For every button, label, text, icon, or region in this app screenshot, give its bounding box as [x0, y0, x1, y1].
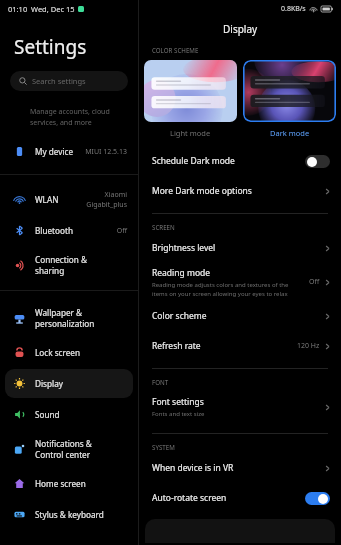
button[interactable]: WLAN	[5, 185, 133, 214]
staticText: Settings	[14, 34, 87, 60]
button[interactable]: When device is in VR	[139, 453, 341, 483]
staticText: Off	[116, 226, 127, 236]
staticText: Home screen	[35, 478, 86, 489]
staticText: Bluetooth	[35, 225, 73, 236]
staticText: Reading mode	[152, 267, 211, 279]
staticText: 01:10 Wed, Dec 15	[8, 4, 75, 14]
button[interactable]: Schedule Dark mode	[139, 146, 341, 176]
staticText: MIUI 12.5.13	[85, 147, 127, 157]
staticText: FONT	[152, 378, 169, 386]
staticText: Sound	[35, 409, 60, 420]
staticText: When device is in VR	[152, 462, 234, 474]
staticText: Connection & sharing	[35, 254, 87, 276]
staticText: Fonts and text size	[152, 410, 205, 418]
staticText: Light mode	[170, 128, 211, 138]
button[interactable]: Connection & sharing	[5, 247, 133, 283]
button[interactable]: Notifications & Control center	[5, 431, 133, 467]
staticText: WLAN	[35, 194, 59, 205]
button[interactable]: Brightness level	[139, 233, 341, 263]
button[interactable]: My device	[5, 137, 133, 166]
staticText: Manage accounts, cloud services, and mor…	[30, 107, 110, 127]
staticText: Auto-rotate screen	[152, 492, 227, 504]
button[interactable]: Search settings	[10, 71, 128, 91]
button[interactable]: Lock screen	[5, 338, 133, 367]
button[interactable]: On	[305, 492, 330, 505]
staticText: Notifications & Control center	[35, 438, 92, 460]
button[interactable]: Light mode	[144, 60, 237, 138]
staticText: More Dark mode options	[152, 185, 252, 197]
staticText: Xiaomi Gigabit_plus	[86, 190, 127, 210]
button[interactable]: Color scheme	[139, 301, 341, 331]
button[interactable]: Stylus & keyboard	[5, 500, 133, 529]
staticText: Font settings	[152, 396, 204, 408]
staticText: SYSTEM	[152, 443, 175, 451]
staticText: Search settings	[32, 76, 86, 86]
staticText: Lock screen	[35, 347, 81, 358]
staticText: 120 Hz	[297, 341, 320, 351]
button[interactable]: Refresh rate	[139, 331, 341, 361]
staticText: Stylus & keyboard	[35, 509, 104, 520]
staticText: Display	[223, 22, 258, 36]
button[interactable]: Wallpaper & personalization	[5, 300, 133, 336]
staticText: My device	[35, 146, 74, 157]
staticText: Off	[309, 277, 320, 287]
staticText: 0.8KB/s	[281, 4, 306, 14]
button[interactable]: Home screen	[5, 469, 133, 498]
staticText: Reading mode adjusts colors and textures…	[152, 281, 289, 297]
staticText: Brightness level	[152, 242, 216, 254]
staticText: Wallpaper & personalization	[35, 307, 95, 329]
button[interactable]: Display	[5, 369, 133, 398]
staticText: Color scheme	[152, 310, 207, 322]
button[interactable]: Reading mode	[139, 263, 341, 301]
staticText: Schedule Dark mode	[152, 155, 235, 167]
button[interactable]: Bluetooth	[5, 216, 133, 245]
staticText: COLOR SCHEME	[152, 46, 199, 54]
button[interactable]: Sound	[5, 400, 133, 429]
staticText: Refresh rate	[152, 340, 201, 352]
staticText: SCREEN	[152, 223, 175, 231]
button[interactable]: Font settings	[139, 388, 341, 426]
staticText: Display	[35, 378, 63, 389]
button[interactable]: Auto-rotate screen	[139, 483, 341, 513]
button[interactable]: More Dark mode options	[139, 176, 341, 206]
staticText: Dark mode	[270, 128, 310, 138]
button[interactable]: Off	[305, 155, 330, 168]
button[interactable]: Dark mode	[243, 60, 336, 138]
